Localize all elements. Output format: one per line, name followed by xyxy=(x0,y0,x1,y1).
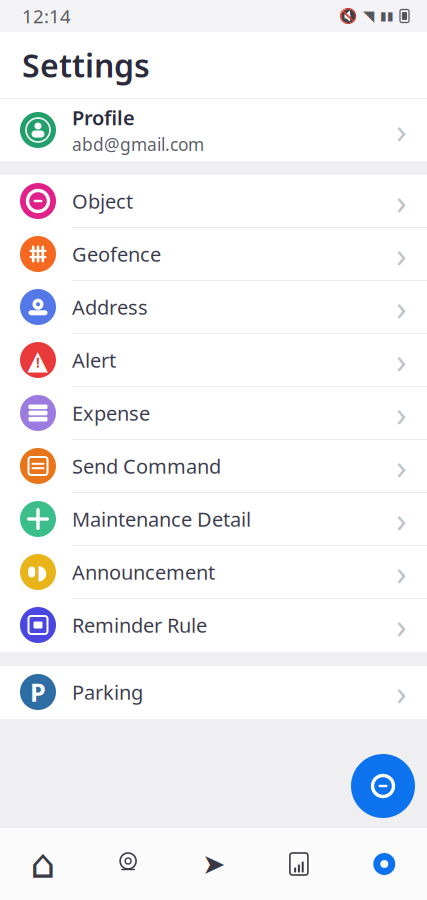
staticText: P xyxy=(30,675,46,709)
staticText: Address xyxy=(72,294,148,320)
staticText: 🔇 xyxy=(339,8,357,24)
button[interactable]: Home xyxy=(0,828,85,900)
button[interactable]: Places xyxy=(85,828,171,900)
button[interactable]: Expense xyxy=(0,387,427,440)
button[interactable]: Profile xyxy=(0,99,427,161)
staticText: 12:14 xyxy=(22,4,71,28)
staticText: ▲ xyxy=(27,345,48,375)
staticText: ◥ xyxy=(363,8,374,24)
staticText: ◗ xyxy=(37,561,48,583)
button[interactable]: ▲ xyxy=(0,334,427,387)
button[interactable]: Geofence xyxy=(0,228,427,281)
staticText: › xyxy=(396,602,407,648)
staticText: › xyxy=(396,443,407,489)
button[interactable]: Navigate xyxy=(171,828,256,900)
button[interactable]: P xyxy=(0,666,427,719)
staticText: Alert xyxy=(72,347,116,373)
staticText: Reminder Rule xyxy=(72,612,207,638)
staticText: Send Command xyxy=(72,453,221,479)
button[interactable]: Reports xyxy=(256,828,342,900)
staticText: Maintenance Detail xyxy=(72,506,251,532)
staticText: › xyxy=(396,496,407,542)
staticText: › xyxy=(396,669,407,715)
button[interactable]: Reminder Rule xyxy=(0,599,427,652)
staticText: Parking xyxy=(72,679,143,705)
staticText: ⌂ xyxy=(30,841,55,887)
staticText: › xyxy=(396,337,407,383)
staticText: › xyxy=(396,231,407,277)
staticText: › xyxy=(396,390,407,436)
staticText: Settings xyxy=(22,44,150,86)
button[interactable]: Object xyxy=(0,175,427,228)
button[interactable]: Send Command xyxy=(0,440,427,493)
button[interactable]: Address xyxy=(0,281,427,334)
staticText: Object xyxy=(72,188,133,214)
button[interactable]: ◗ xyxy=(0,546,427,599)
button[interactable]: Settings xyxy=(342,828,427,900)
staticText: › xyxy=(396,178,407,224)
staticText: ▮▮ xyxy=(380,9,394,23)
staticText: ! xyxy=(36,354,40,371)
staticText: ➤ xyxy=(202,848,225,880)
staticText: › xyxy=(396,284,407,330)
staticText: abd@gmail.com xyxy=(72,133,204,156)
staticText: Expense xyxy=(72,400,150,426)
staticText: Geofence xyxy=(72,241,161,267)
staticText: › xyxy=(396,107,407,153)
staticText: › xyxy=(396,549,407,595)
staticText: Profile xyxy=(72,104,135,131)
button[interactable]: Dashboard xyxy=(351,754,415,818)
staticText: Announcement xyxy=(72,559,215,585)
button[interactable]: Maintenance Detail xyxy=(0,493,427,546)
